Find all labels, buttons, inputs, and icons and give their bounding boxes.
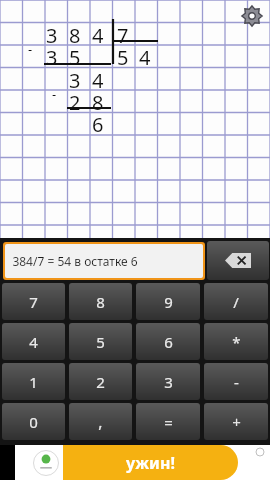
staticText: 3 — [46, 22, 58, 49]
staticText: 9 — [164, 292, 173, 312]
staticText: = — [164, 412, 173, 432]
button[interactable]: 8 — [69, 283, 132, 320]
staticText: , — [98, 411, 103, 433]
staticText: 4 — [92, 22, 104, 49]
staticText: 5 — [96, 332, 105, 352]
staticText: - — [52, 85, 57, 103]
button[interactable]: ужин! — [15, 445, 270, 480]
staticText: 0 — [29, 412, 38, 432]
button[interactable]: 6 — [136, 323, 200, 360]
button[interactable]: 0 — [2, 403, 65, 440]
button[interactable]: 1 — [2, 363, 65, 400]
button[interactable]: - — [204, 363, 268, 400]
staticText: 8 — [69, 22, 81, 49]
staticText: 6 — [164, 332, 173, 352]
staticText: + — [232, 412, 241, 432]
staticText: 4 — [29, 332, 38, 352]
staticText: 8 — [92, 89, 104, 116]
staticText: 3 — [164, 372, 173, 392]
staticText: 4 — [92, 67, 104, 94]
staticText: * — [232, 332, 241, 352]
button[interactable]: 4 — [2, 323, 65, 360]
staticText: 5 — [117, 44, 129, 71]
button[interactable]: 2 — [69, 363, 132, 400]
staticText: 3 — [69, 67, 81, 94]
staticText: 7 — [117, 22, 129, 49]
staticText: 7 — [29, 292, 38, 312]
staticText: ужин! — [126, 452, 175, 474]
button[interactable]: * — [204, 323, 268, 360]
button[interactable]: Settings — [238, 2, 266, 30]
staticText: 2 — [69, 89, 81, 116]
staticText: 8 — [96, 292, 105, 312]
staticText: - — [28, 40, 33, 58]
staticText: 4 — [139, 44, 151, 71]
button[interactable]: / — [204, 283, 268, 320]
staticText: 384/7 = 54 в остатке 6 — [12, 253, 138, 269]
staticText: 1 — [29, 372, 38, 392]
button[interactable]: 5 — [69, 323, 132, 360]
staticText: - — [234, 372, 239, 392]
staticText: / — [233, 292, 239, 312]
button[interactable]: Backspace — [207, 241, 269, 280]
button[interactable]: 9 — [136, 283, 200, 320]
button[interactable]: = — [136, 403, 200, 440]
button[interactable]: 3 — [136, 363, 200, 400]
button[interactable]: + — [204, 403, 268, 440]
staticText: 2 — [96, 372, 105, 392]
button[interactable]: 384/7 = 54 в остатке 6 — [5, 244, 203, 278]
staticText: 6 — [92, 111, 104, 138]
button[interactable]: 7 — [2, 283, 65, 320]
staticText: 5 — [69, 44, 81, 71]
staticText: 3 — [46, 44, 58, 71]
button[interactable]: , — [69, 403, 132, 440]
